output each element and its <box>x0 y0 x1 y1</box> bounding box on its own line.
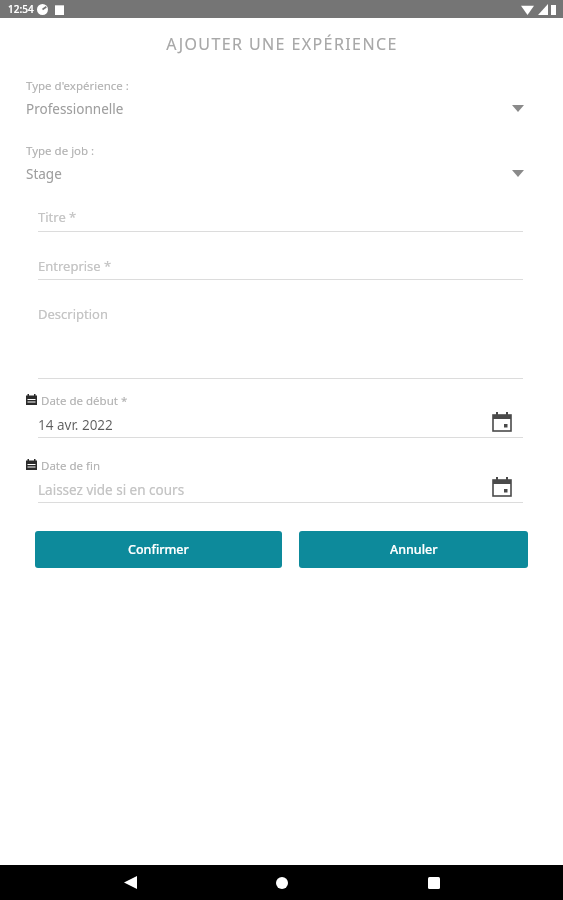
staticText: Titre * <box>38 208 77 226</box>
button[interactable]: Type de job : <box>0 143 563 195</box>
staticText: 12:54 <box>8 2 34 16</box>
staticText: Type de job : <box>26 143 95 159</box>
staticText: Laissez vide si en cours <box>38 481 185 499</box>
button[interactable]: Confirmer <box>35 531 282 568</box>
staticText: Professionnelle <box>26 100 124 118</box>
staticText: Type d'expérience : <box>26 78 129 94</box>
button[interactable]: Choisir une date <box>492 477 512 497</box>
button[interactable]: 14 avr. 2022 <box>38 416 113 434</box>
button[interactable]: Description <box>0 305 563 384</box>
staticText: Annuler <box>390 541 438 558</box>
button[interactable]: Choisir une date <box>492 412 512 432</box>
staticText: Date de fin <box>41 458 101 474</box>
staticText: Entreprise * <box>38 257 112 275</box>
button[interactable]: Recents <box>411 865 457 900</box>
staticText: Date de début * <box>41 393 128 409</box>
button[interactable]: Type d'expérience : <box>0 78 563 130</box>
staticText: 14 avr. 2022 <box>38 416 113 434</box>
staticText: Stage <box>26 165 62 183</box>
button[interactable]: Annuler <box>299 531 528 568</box>
staticText: Confirmer <box>128 541 189 558</box>
button[interactable]: Home <box>259 865 305 900</box>
button[interactable]: Back <box>107 865 153 900</box>
staticText: AJOUTER UNE EXPÉRIENCE <box>166 33 398 55</box>
button[interactable]: Entreprise * <box>0 257 563 285</box>
button[interactable]: Laissez vide si en cours <box>38 481 185 499</box>
button[interactable]: Titre * <box>0 208 563 237</box>
staticText: Description <box>38 305 108 323</box>
